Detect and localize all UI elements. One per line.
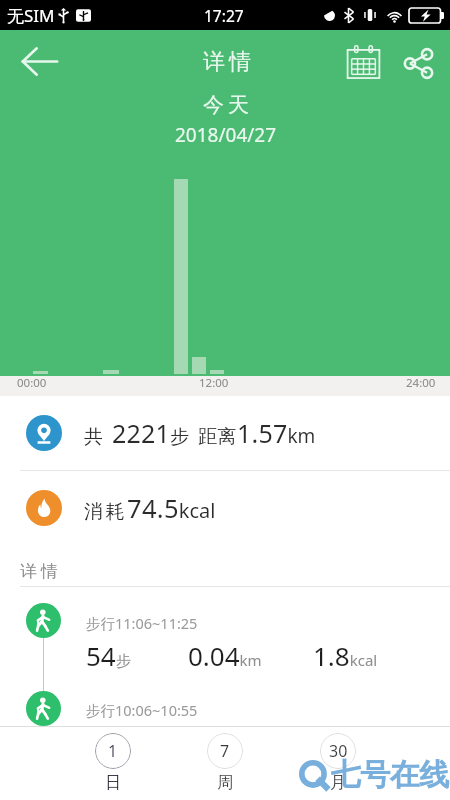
staticText: 7: [220, 740, 230, 762]
staticText: 24:00: [406, 375, 436, 391]
staticText: 2018/04/27: [175, 122, 277, 148]
staticText: 周: [217, 773, 233, 793]
staticText: 30: [329, 740, 348, 762]
staticText: 54步: [86, 638, 131, 673]
staticText: 1.8kcal: [313, 638, 378, 673]
staticText: 00:00: [17, 375, 47, 391]
staticText: 共2221步距离1.57km: [84, 416, 316, 450]
staticText: 日: [105, 773, 121, 793]
button[interactable]: 1: [65, 727, 161, 800]
staticText: 详情: [201, 48, 253, 76]
staticText: 步行11:06~11:25: [86, 613, 198, 633]
button[interactable]: Back: [10, 31, 68, 86]
staticText: 17:27: [204, 5, 244, 26]
staticText: 步行10:06~10:55: [86, 700, 198, 720]
staticText: 0.04km: [188, 638, 262, 673]
staticText: 无SIM: [7, 4, 55, 27]
button[interactable]: 消耗74.5kcal: [0, 471, 450, 545]
button[interactable]: Calendar: [339, 38, 387, 86]
staticText: 消耗74.5kcal: [84, 491, 216, 526]
button[interactable]: 共2221步距离1.57km: [0, 396, 450, 470]
button[interactable]: Share: [394, 39, 442, 87]
button[interactable]: 7: [177, 727, 273, 800]
button[interactable]: 30: [290, 727, 386, 800]
staticText: 详情: [18, 561, 60, 582]
staticText: 今天: [201, 92, 251, 118]
staticText: 1: [108, 740, 118, 762]
staticText: 七号在线: [331, 756, 449, 794]
staticText: 12:00: [199, 375, 229, 391]
staticText: 月: [330, 773, 346, 793]
